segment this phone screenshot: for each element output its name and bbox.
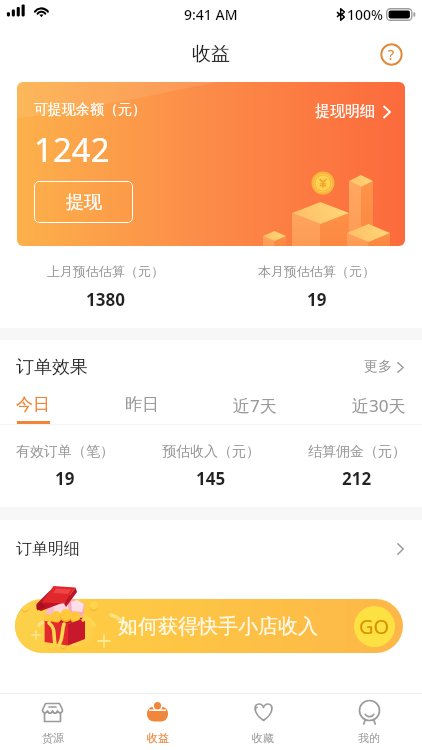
staticText: 有效订单（笔）: [16, 443, 114, 461]
staticText: 100%: [347, 5, 383, 24]
button[interactable]: 今日: [16, 394, 50, 424]
button[interactable]: 我的: [316, 694, 422, 750]
staticText: 可提现余额（元）: [34, 101, 146, 119]
staticText: 19: [307, 288, 327, 311]
button[interactable]: 提现: [34, 181, 133, 223]
button[interactable]: 更多: [364, 358, 404, 376]
button[interactable]: 订单明细: [0, 520, 422, 577]
staticText: 近7天: [233, 394, 277, 417]
button[interactable]: 货源: [0, 694, 105, 750]
staticText: 更多: [364, 358, 392, 376]
staticText: 货源: [42, 731, 64, 745]
button[interactable]: 如何获得快手小店收入: [15, 599, 403, 653]
button[interactable]: 近7天: [233, 394, 277, 424]
staticText: GO: [359, 613, 390, 640]
staticText: 19: [55, 467, 75, 490]
staticText: 212: [342, 467, 372, 490]
button[interactable]: 收藏: [210, 694, 316, 750]
staticText: 145: [196, 467, 226, 490]
staticText: 订单明细: [16, 539, 80, 559]
staticText: 上月预估估算（元）: [47, 263, 164, 279]
staticText: 收益: [147, 731, 169, 745]
staticText: 9:41 AM: [184, 5, 238, 24]
staticText: 结算佣金（元）: [308, 443, 406, 461]
staticText: 近30天: [352, 394, 406, 417]
staticText: 本月预估估算（元）: [258, 263, 375, 279]
button[interactable]: 收益: [105, 694, 210, 750]
staticText: 订单效果: [16, 356, 88, 379]
staticText: 预估收入（元）: [162, 443, 260, 461]
staticText: 收藏: [252, 731, 274, 745]
staticText: 今日: [16, 394, 50, 415]
staticText: ?: [388, 45, 395, 64]
staticText: 提现明细: [315, 102, 375, 121]
button[interactable]: Help: [380, 43, 403, 66]
button[interactable]: 昨日: [125, 394, 159, 424]
staticText: 提现: [66, 191, 102, 214]
staticText: 如何获得快手小店收入: [118, 614, 318, 639]
staticText: 收益: [192, 42, 230, 66]
staticText: 昨日: [125, 394, 159, 415]
staticText: 我的: [358, 731, 380, 745]
staticText: 1242: [34, 127, 110, 172]
button[interactable]: 提现明细: [315, 102, 391, 121]
button[interactable]: 近30天: [352, 394, 406, 424]
staticText: 1380: [86, 288, 125, 311]
